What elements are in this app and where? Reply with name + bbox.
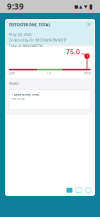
- staticText: TESTOSTERONE, TOTAL: [12, 93, 39, 96]
- staticText: Odoo # 8804388738: [9, 43, 43, 49]
- button[interactable]: Close: [86, 22, 91, 27]
- staticText: REPORTED: [12, 97, 25, 100]
- staticText: nmol/L: [81, 52, 90, 56]
- staticText: 9:39: [7, 1, 24, 12]
- button[interactable]: Video: [66, 188, 72, 193]
- staticText: TESTOSTERONE, TOTAL: [9, 22, 51, 27]
- button[interactable]: Chart: [76, 188, 82, 193]
- staticText: 75.0: [66, 47, 80, 56]
- staticText: May 24, 2025: [9, 31, 32, 37]
- staticText: 7.6: [46, 71, 51, 75]
- staticText: ▪▴ ▾ ▮: [74, 3, 93, 10]
- button[interactable]: Info: [85, 187, 91, 193]
- staticText: Ordered by Dr MOHAN PANDIT: [9, 37, 67, 43]
- staticText: !: [86, 54, 87, 59]
- staticText: HIGH: [84, 71, 91, 75]
- staticText: Notes: [9, 80, 19, 86]
- staticText: LOW: [9, 71, 14, 75]
- staticText: ✕: [87, 22, 90, 27]
